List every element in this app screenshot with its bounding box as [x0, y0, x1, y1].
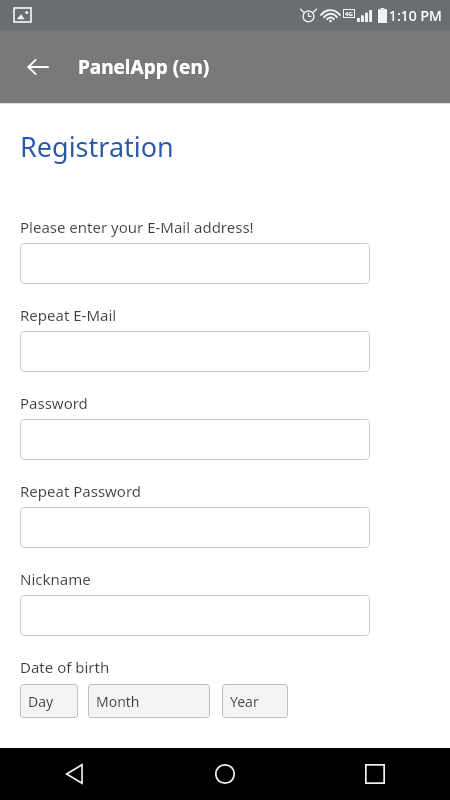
staticText: Please enter your E-Mail address! [20, 217, 254, 237]
button[interactable]: Navigate up [14, 43, 62, 91]
staticText: Repeat E-Mail [20, 305, 117, 325]
button[interactable] [20, 595, 370, 636]
button[interactable]: Month [88, 684, 210, 718]
staticText: Date of birth [20, 657, 110, 677]
staticText: Month [96, 692, 140, 711]
button[interactable] [20, 507, 370, 548]
staticText: PanelApp (en) [78, 54, 210, 80]
staticText: Registration [20, 128, 174, 165]
staticText: Year [230, 692, 259, 711]
staticText: Day [28, 692, 54, 711]
staticText: Nickname [20, 569, 91, 589]
staticText: 1:10 PM [389, 6, 442, 25]
button[interactable] [20, 419, 370, 460]
button[interactable]: Year [222, 684, 288, 718]
button[interactable] [20, 243, 370, 284]
staticText: Password [20, 393, 88, 413]
button[interactable]: Day [20, 684, 78, 718]
button[interactable] [20, 331, 370, 372]
button[interactable]: Recent apps [300, 748, 450, 800]
button[interactable]: Back [0, 748, 150, 800]
staticText: 4G [345, 10, 353, 18]
staticText: Repeat Password [20, 481, 142, 501]
button[interactable]: Home [150, 748, 300, 800]
